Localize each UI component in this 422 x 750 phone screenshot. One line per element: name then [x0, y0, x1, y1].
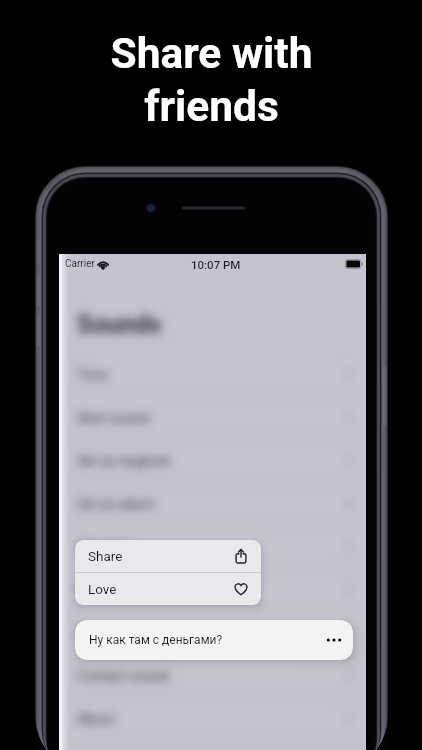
staticText: Contact sound — [77, 668, 168, 684]
button[interactable]: More options — [322, 628, 346, 652]
staticText: Set as alarm — [77, 496, 155, 512]
button[interactable]: Ну как там с деньгами? — [75, 620, 353, 660]
staticText: Share with friends — [110, 29, 313, 131]
staticText: Tone — [77, 367, 108, 383]
staticText: About — [77, 711, 115, 727]
staticText: Share — [88, 548, 123, 564]
staticText: Sounds — [77, 310, 162, 339]
staticText: Vibration — [77, 539, 133, 555]
button[interactable]: Love — [75, 573, 261, 605]
staticText: Ну как там с деньгами? — [89, 633, 223, 647]
staticText: Set as ringtone — [77, 453, 171, 469]
staticText: Keyboard clicks — [77, 582, 175, 598]
staticText: 10:07 PM — [191, 258, 241, 271]
staticText: Love — [88, 581, 117, 597]
button[interactable]: Share — [75, 540, 261, 572]
staticText: Lock sound — [77, 625, 149, 641]
staticText: Alert sound — [77, 410, 149, 426]
staticText: Carrier — [65, 258, 95, 270]
